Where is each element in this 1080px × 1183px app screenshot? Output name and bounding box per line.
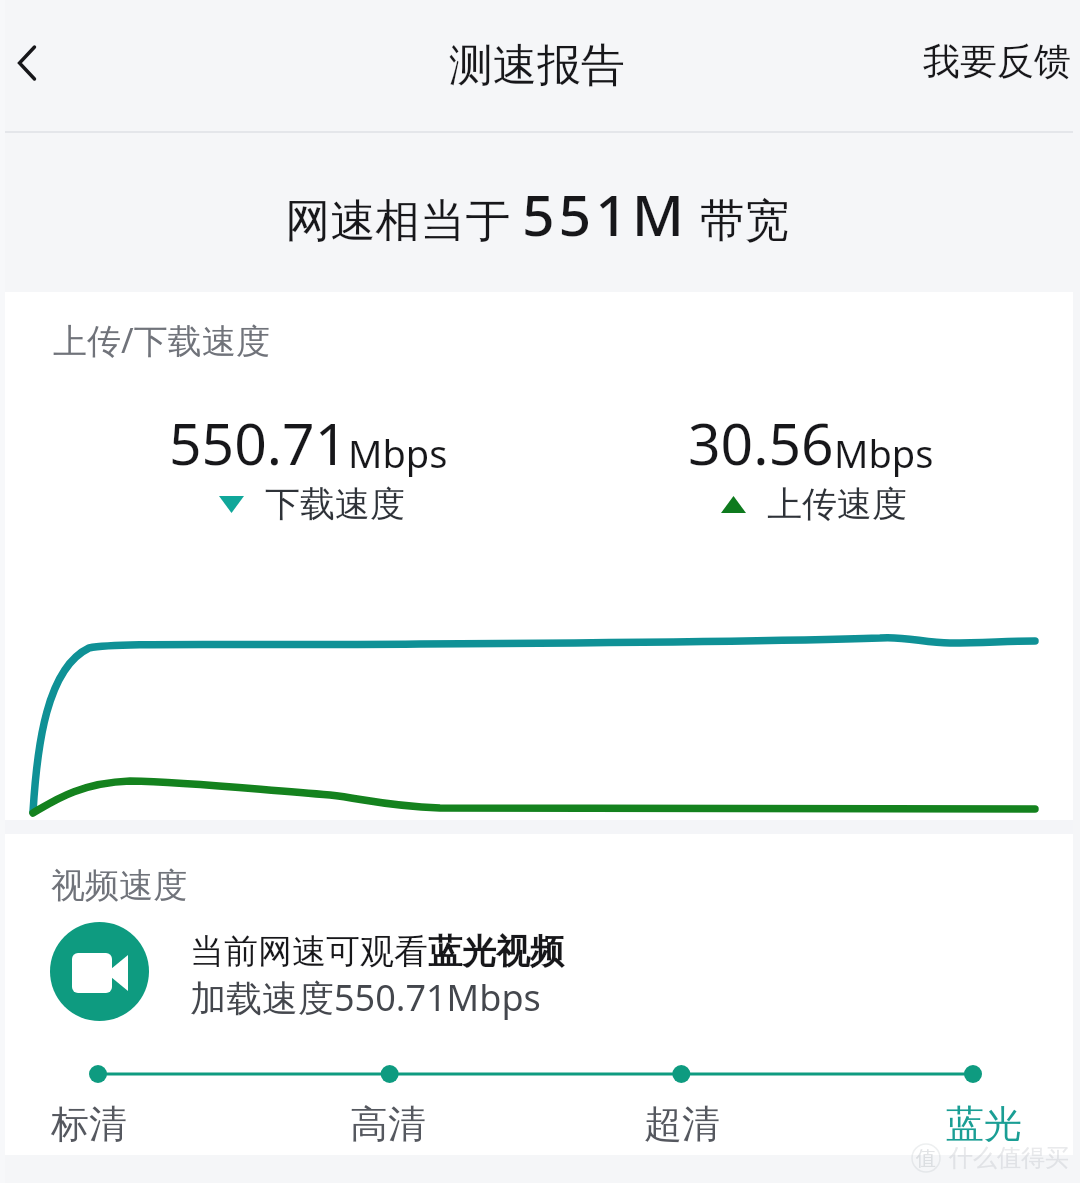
staticText: 测速报告 [449, 38, 625, 93]
button[interactable]: Back [0, 28, 76, 104]
button[interactable]: Video quality [50, 922, 149, 1021]
button[interactable]: 蓝光 [939, 1099, 1029, 1149]
staticText: 什么值得买 [949, 1143, 1069, 1173]
staticText: 高清 [350, 1100, 426, 1148]
staticText: 30.56 [688, 404, 834, 482]
staticText: 蓝光 [946, 1100, 1022, 1148]
staticText: Mbps [834, 427, 934, 479]
staticText: 标清 [51, 1100, 127, 1148]
staticText: 超清 [644, 1100, 720, 1148]
staticText: 550.71 [169, 404, 348, 482]
staticText: 值 [916, 1146, 936, 1171]
staticText: 我要反馈 [923, 38, 1071, 85]
staticText: 上传/下载速度 [53, 317, 270, 363]
staticText: Mbps [348, 427, 448, 479]
button[interactable]: 超清 [637, 1099, 727, 1149]
staticText: 视频速度 [51, 864, 187, 907]
staticText: 上传速度 [767, 482, 907, 526]
staticText: 网速相当于 551M 带宽 [285, 175, 790, 253]
button[interactable]: 我要反馈 [915, 30, 1079, 93]
staticText: 下载速度 [265, 482, 405, 526]
staticText: 当前网速可观看蓝光视频 [190, 930, 564, 973]
button[interactable]: 标清 [44, 1099, 134, 1149]
staticText: 加载速度550.71Mbps [190, 973, 541, 1022]
button[interactable]: 高清 [343, 1099, 433, 1149]
